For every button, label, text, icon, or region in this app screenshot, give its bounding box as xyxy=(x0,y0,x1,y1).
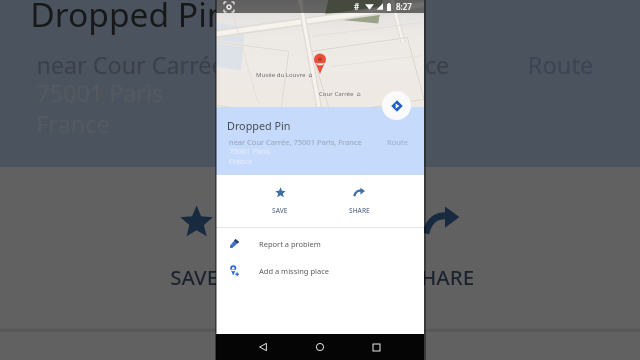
button[interactable]: SAVE xyxy=(248,175,312,226)
staticText: 75001 Paris xyxy=(229,146,270,156)
staticText: SAVE xyxy=(272,206,288,215)
button[interactable]: Route xyxy=(387,137,409,147)
button[interactable]: Add a missing place xyxy=(216,257,424,284)
button[interactable]: Recents xyxy=(349,334,403,360)
button[interactable]: Home xyxy=(293,334,347,360)
button[interactable]: Report a problem xyxy=(216,230,424,257)
button[interactable]: Dropped Pin xyxy=(216,107,424,175)
staticText: SHARE xyxy=(349,206,370,215)
staticText: Route xyxy=(387,137,409,147)
button[interactable]: Back xyxy=(236,334,290,360)
staticText: 8:27 xyxy=(396,1,412,12)
staticText: SHARE xyxy=(410,263,475,291)
button[interactable]: Report a problem xyxy=(0,338,640,360)
staticText: Route xyxy=(528,49,596,80)
button[interactable]: SHARE xyxy=(327,175,391,226)
button[interactable]: Dropped Pin xyxy=(0,0,640,167)
staticText: Dropped Pin xyxy=(227,118,291,133)
staticText: 75001 Paris xyxy=(36,77,164,108)
staticText: France xyxy=(36,108,111,139)
staticText: Add a missing place xyxy=(259,266,329,276)
staticText: SAVE xyxy=(170,263,220,291)
staticText: near Cour Carrée, 75001 Paris, France xyxy=(229,137,362,147)
button[interactable]: SAVE xyxy=(95,167,294,326)
button[interactable]: Route xyxy=(528,49,596,80)
staticText: # xyxy=(354,1,360,12)
staticText: Musée du Louvre ⌂ xyxy=(256,70,313,78)
button[interactable]: Directions xyxy=(382,91,411,120)
staticText: near Cour Carrée, 75001 Paris, France xyxy=(36,49,450,80)
button[interactable]: SHARE xyxy=(341,167,540,326)
staticText: France xyxy=(229,156,253,166)
staticText: Cour Carrée ⌂ xyxy=(319,89,361,97)
staticText: Dropped Pin xyxy=(30,0,229,36)
staticText: Report a problem xyxy=(259,239,321,249)
